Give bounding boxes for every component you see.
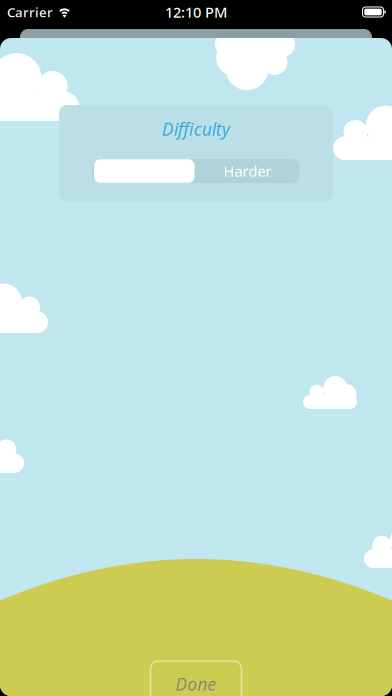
- button[interactable]: Done: [150, 661, 241, 696]
- staticText: Harder: [223, 161, 271, 181]
- staticText: Difficulty: [162, 117, 230, 140]
- button[interactable]: Harder: [198, 159, 296, 183]
- button[interactable]: Easier: [94, 159, 194, 183]
- staticText: Done: [175, 672, 216, 695]
- staticText: 12:10 PM: [165, 2, 227, 22]
- staticText: Carrier: [7, 3, 53, 21]
